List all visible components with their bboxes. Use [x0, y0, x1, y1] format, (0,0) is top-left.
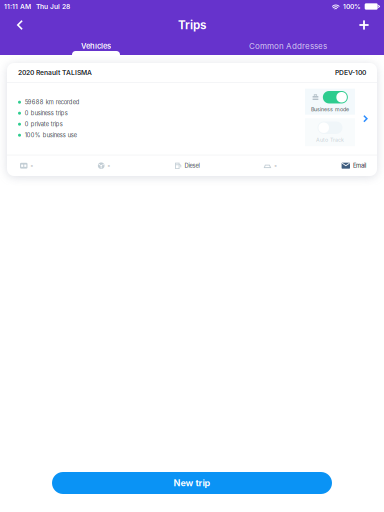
button[interactable]: New trip	[52, 472, 332, 494]
staticText: Thu Jul 28	[36, 2, 70, 11]
staticText: 11:11 AM	[4, 2, 31, 11]
staticText: 100%	[343, 2, 361, 11]
button[interactable]: Back	[6, 14, 34, 36]
staticText: Auto Track	[316, 136, 344, 143]
staticText: Email	[353, 162, 366, 169]
staticText: 100% business use	[25, 132, 77, 139]
staticText: 59688 km recorded	[25, 99, 80, 106]
button[interactable]: Vehicles	[0, 37, 192, 55]
staticText: Common Addresses	[249, 41, 327, 51]
staticText: New trip	[173, 477, 210, 488]
button[interactable]: Email	[342, 162, 366, 169]
button[interactable]: Add trip	[350, 14, 378, 36]
staticText: Diesel	[184, 162, 199, 169]
button[interactable]: Common Addresses	[192, 37, 384, 55]
staticText: PDEV-100	[335, 68, 366, 77]
staticText: 0 business trips	[25, 110, 68, 117]
staticText: 0 private trips	[25, 121, 63, 128]
staticText: Business mode	[311, 106, 349, 112]
staticText: -	[107, 162, 110, 169]
staticText: 2020 Renault TALISMA	[18, 68, 92, 77]
staticText: -	[274, 162, 277, 169]
staticText: -	[30, 162, 33, 169]
staticText: Vehicles	[81, 41, 111, 51]
staticText: Trips	[178, 18, 206, 32]
